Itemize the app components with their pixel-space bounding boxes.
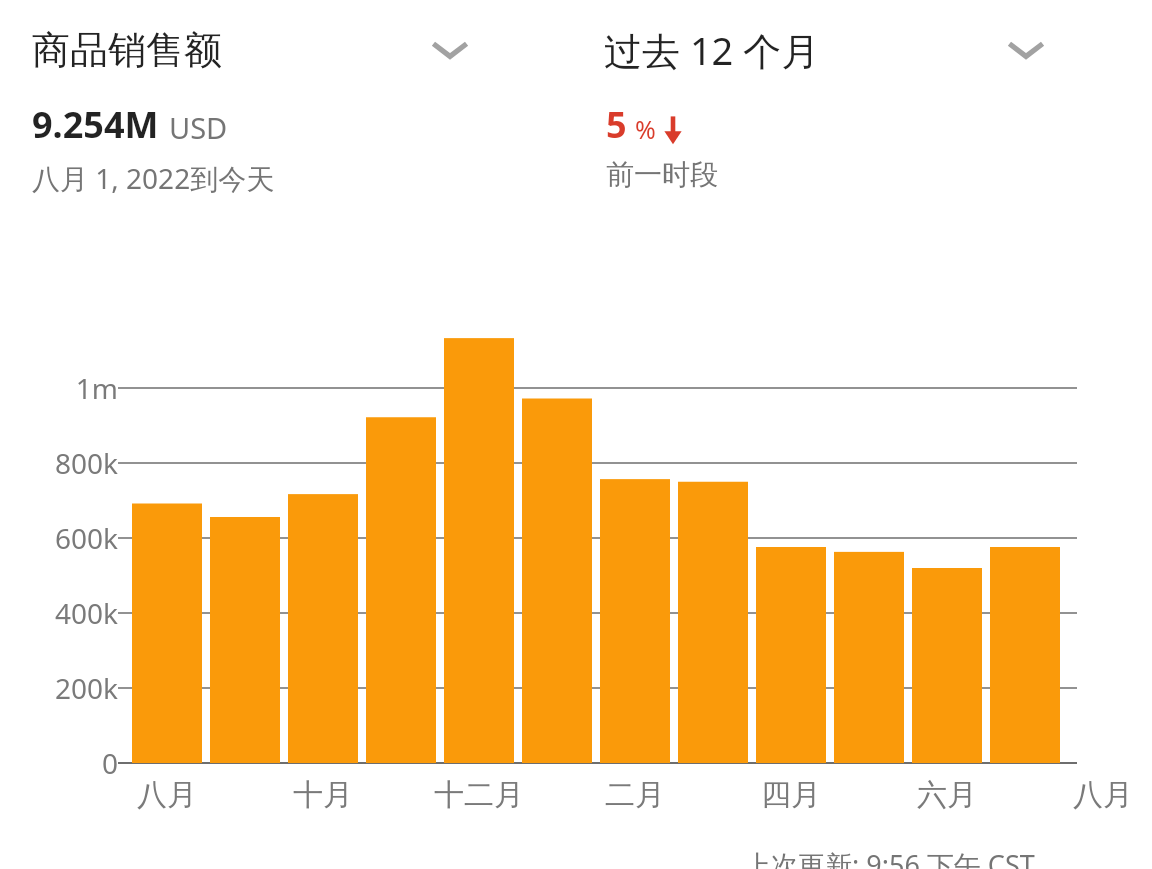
staticText: 400k [0, 594, 118, 632]
staticText: USD [169, 108, 228, 147]
staticText: 商品销售额 [32, 26, 222, 74]
staticText: 八月 [87, 776, 247, 814]
staticText: 5 [606, 100, 627, 149]
other: Change date range [1004, 28, 1048, 72]
staticText: 600k [0, 519, 118, 557]
staticText: 八月 1, 2022到今天 [32, 159, 275, 197]
other: Change metric [428, 28, 472, 72]
staticText: 1m [0, 369, 118, 407]
staticText: 200k [0, 669, 118, 707]
staticText: 9.254M [32, 100, 159, 149]
staticText: 十二月 [399, 776, 559, 814]
staticText: 过去 12 个月 [604, 24, 820, 76]
staticText: 八月 [1023, 776, 1152, 814]
staticText: 上次更新: 9:56 下午 CST [744, 846, 1035, 869]
staticText: 800k [0, 444, 118, 482]
staticText: 四月 [711, 776, 871, 814]
staticText: 十月 [243, 776, 403, 814]
staticText: 前一时段 [606, 157, 718, 192]
button[interactable]: 商品销售额 [0, 0, 576, 100]
button[interactable]: 过去 12 个月 [576, 0, 1152, 100]
staticText: 二月 [555, 776, 715, 814]
staticText: % [635, 112, 656, 146]
staticText: 六月 [867, 776, 1027, 814]
staticText: 0 [0, 744, 118, 782]
